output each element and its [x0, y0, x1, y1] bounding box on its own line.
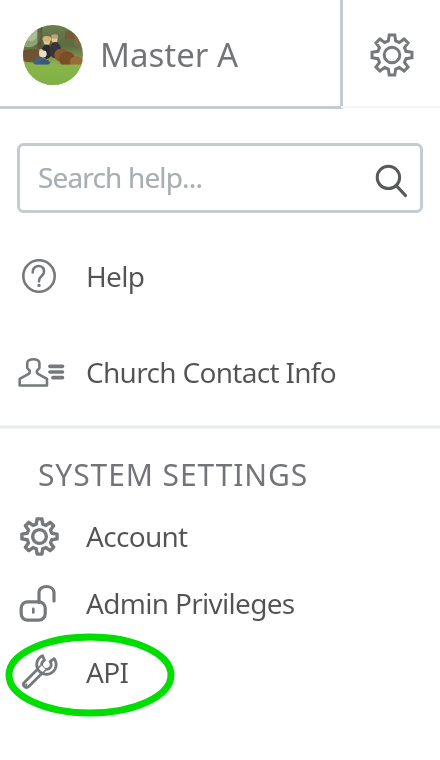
button[interactable]: Settings [344, 0, 440, 109]
button[interactable]: Admin Privileges [0, 581, 440, 625]
staticText: API [86, 653, 129, 691]
staticText: Church Contact Info [86, 353, 336, 391]
button[interactable]: API [0, 650, 440, 694]
button[interactable]: Search help [17, 143, 423, 213]
button[interactable]: Master A [0, 0, 341, 109]
staticText: Search help... [38, 158, 203, 196]
button[interactable]: Church Contact Info [0, 350, 440, 394]
button[interactable]: Help [0, 254, 440, 298]
button[interactable]: Account [0, 514, 440, 558]
staticText: SYSTEM SETTINGS [38, 454, 309, 495]
staticText: Admin Privileges [86, 584, 295, 622]
staticText: Master A [100, 32, 239, 77]
staticText: Help [86, 257, 145, 295]
staticText: Account [86, 517, 188, 555]
